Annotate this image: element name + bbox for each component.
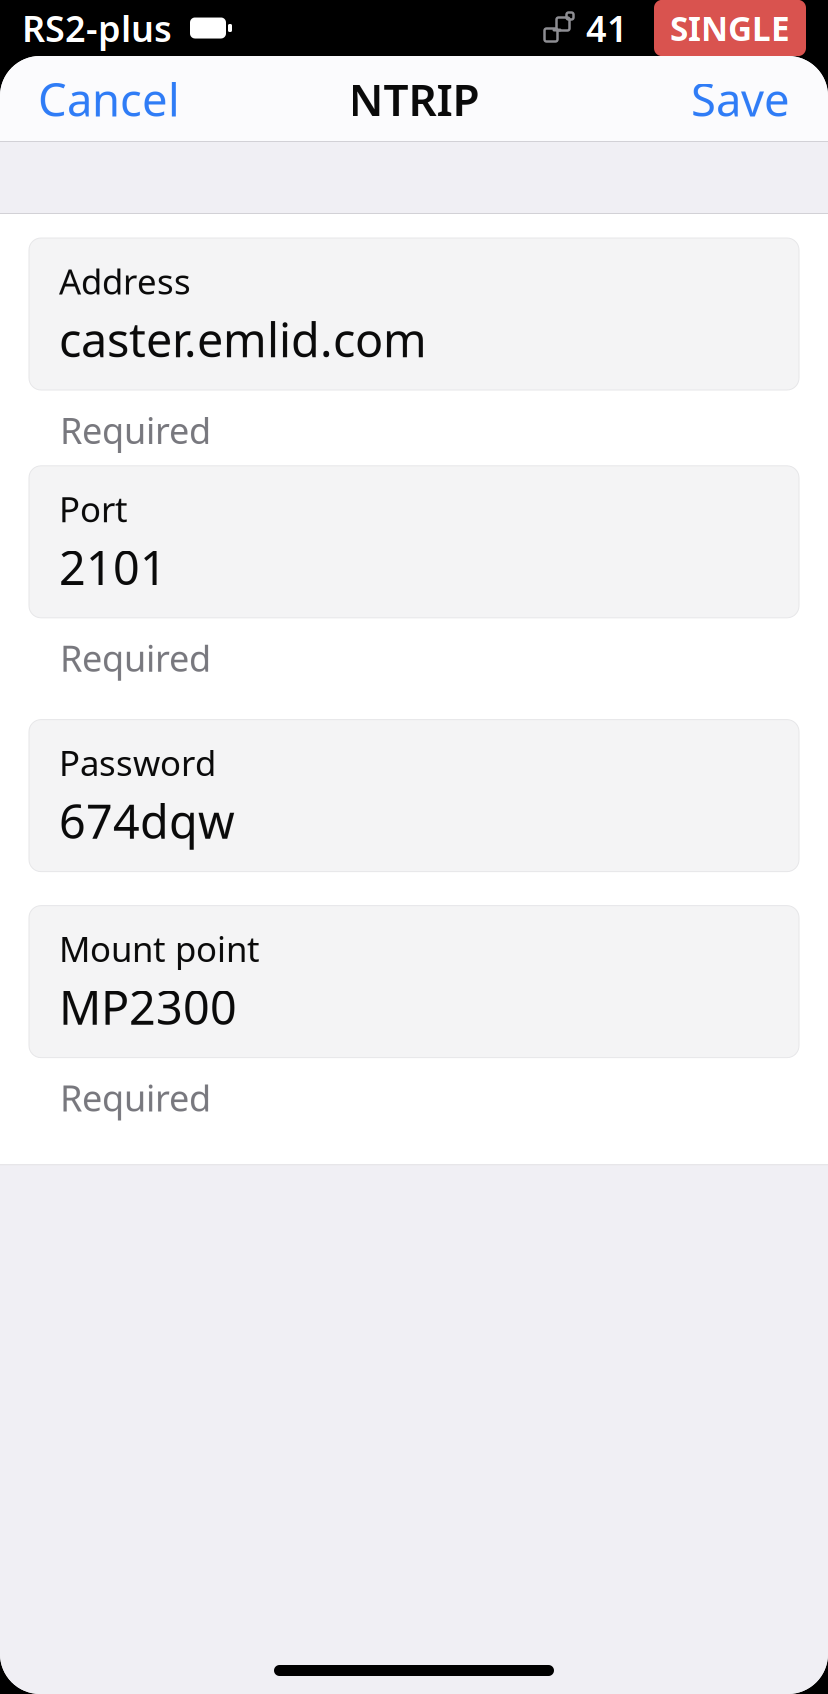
button[interactable]: Save	[677, 59, 804, 139]
staticText: Cancel	[38, 69, 180, 129]
staticText: SINGLE	[670, 6, 790, 50]
staticText: caster.emlid.com	[59, 308, 427, 370]
button[interactable]: Port	[0, 466, 828, 618]
staticText: 41	[586, 4, 628, 52]
staticText: Port	[59, 486, 128, 532]
button[interactable]: Address	[0, 238, 828, 390]
staticText: 674dqw	[59, 790, 235, 852]
staticText: NTRIP	[348, 70, 479, 128]
staticText: RS2-plus	[22, 4, 172, 52]
button[interactable]: Password	[0, 720, 828, 872]
staticText: MP2300	[59, 976, 237, 1038]
staticText: Save	[691, 69, 790, 129]
staticText: Required	[60, 634, 211, 682]
staticText: Mount point	[59, 926, 260, 972]
staticText: Required	[60, 406, 211, 454]
button[interactable]: Mount point	[0, 906, 828, 1058]
staticText: Password	[59, 740, 216, 786]
staticText: 2101	[59, 536, 167, 598]
button[interactable]: Cancel	[24, 59, 194, 139]
staticText: Required	[60, 1074, 211, 1121]
staticText: Address	[59, 258, 191, 304]
